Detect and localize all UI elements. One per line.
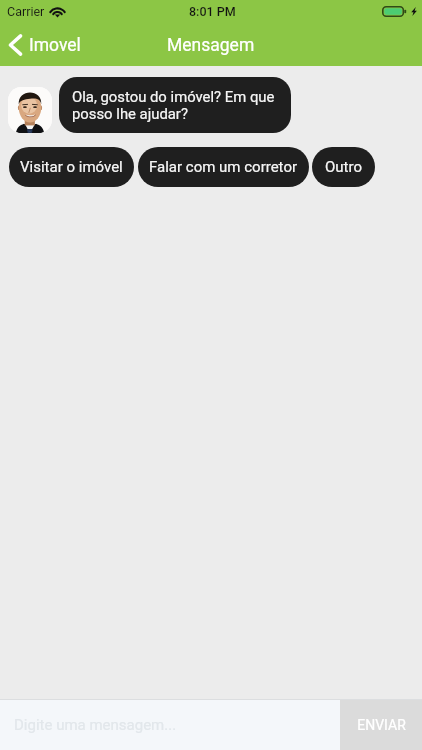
button[interactable]: ENVIAR <box>340 700 422 750</box>
staticText: ENVIAR <box>357 717 406 733</box>
staticText: Imovel <box>29 35 81 56</box>
staticText: Carrier <box>7 4 45 19</box>
button[interactable]: Falar com um corretor <box>138 147 309 187</box>
staticText: Falar com um corretor <box>149 158 298 176</box>
button[interactable]: Imovel <box>0 30 91 60</box>
staticText: 8:01 PM <box>189 4 236 19</box>
button[interactable]: Outro <box>312 147 375 187</box>
button[interactable]: Ola, gostou do imóvel? Em que posso lhe … <box>59 77 291 133</box>
staticText: Ola, gostou do imóvel? Em que posso lhe … <box>72 88 275 122</box>
staticText: Visitar o imóvel <box>20 158 123 176</box>
button[interactable]: Visitar o imóvel <box>9 147 134 187</box>
staticText: Outro <box>325 158 362 176</box>
other: Foto do corretor <box>8 87 52 133</box>
button[interactable]: Digite uma mensagem... <box>0 700 340 750</box>
staticText: Digite uma mensagem... <box>14 716 177 734</box>
staticText: Mensagem <box>167 35 255 56</box>
